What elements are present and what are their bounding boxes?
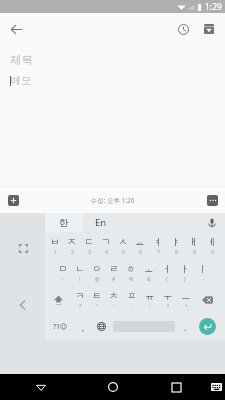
button[interactable]: Enter (199, 318, 216, 335)
staticText: ㅔ (207, 236, 217, 248)
staticText: ㄹ (109, 263, 119, 275)
staticText: 1:29 (205, 1, 222, 13)
staticText: ㅐ (189, 236, 199, 248)
staticText: ㅜ (163, 290, 173, 302)
button[interactable]: Reminder (170, 16, 196, 42)
staticText: * (79, 303, 82, 310)
staticText: 6 (139, 249, 142, 256)
button[interactable]: Archive (196, 16, 222, 42)
button[interactable]: Space (110, 313, 178, 340)
staticText: ㅋ (75, 290, 85, 302)
button[interactable]: ㅜ (159, 286, 177, 313)
button[interactable]: ㅌ (88, 286, 105, 313)
staticText: ㅇ (92, 263, 102, 275)
staticText: 제목 (10, 53, 33, 67)
staticText: " (96, 303, 99, 310)
button[interactable]: Back (4, 17, 28, 41)
staticText: ㅅ (118, 236, 128, 248)
staticText: : (131, 303, 133, 310)
staticText: ㅠ (145, 290, 155, 302)
staticText: ㅊ (109, 290, 119, 302)
button[interactable]: ㅗ (140, 259, 158, 286)
button[interactable]: , (75, 313, 92, 340)
button[interactable]: 한 (45, 213, 83, 232)
staticText: ! (79, 276, 81, 283)
staticText: ㅡ (181, 290, 191, 302)
button[interactable]: ㅑ (167, 232, 185, 259)
staticText: ) (184, 276, 186, 283)
button[interactable]: Home (81, 374, 145, 400)
button[interactable]: Recent apps (145, 374, 207, 400)
button[interactable]: ㅋ (71, 286, 88, 313)
button[interactable]: Move keyboard left (11, 293, 35, 317)
staticText: & (147, 276, 151, 283)
button[interactable]: Voice input (199, 213, 225, 232)
staticText: , (82, 321, 85, 333)
button[interactable]: ㅐ (185, 232, 203, 259)
staticText: En (95, 216, 107, 229)
button[interactable]: ㄴ (71, 259, 88, 286)
staticText: 9 (193, 249, 196, 256)
staticText: ( (166, 276, 168, 283)
button[interactable]: ㅣ (194, 259, 212, 286)
button[interactable]: Backspace (195, 286, 221, 313)
staticText: 1 (54, 249, 57, 256)
button[interactable]: ㅠ (141, 286, 159, 313)
button[interactable]: ㄱ (97, 232, 114, 259)
button[interactable]: ㄷ (80, 232, 97, 259)
button[interactable]: ?1☺ (46, 313, 75, 340)
staticText: ㅛ (135, 236, 145, 248)
button[interactable]: ㅂ (46, 232, 63, 259)
staticText: % (129, 276, 134, 283)
staticText: 3 (88, 249, 91, 256)
staticText: 0 (211, 249, 214, 256)
button[interactable]: ㅏ (176, 259, 194, 286)
button[interactable]: Hide keyboard (207, 374, 225, 400)
staticText: @ (95, 276, 100, 283)
button[interactable]: ㅅ (114, 232, 131, 259)
button[interactable]: Change keyboard language (92, 313, 110, 340)
staticText: ' (113, 303, 115, 310)
staticText: ㅏ (180, 263, 190, 275)
button[interactable]: Add (3, 190, 23, 210)
staticText: ㅂ (50, 236, 60, 248)
button[interactable]: ㅡ (177, 286, 195, 313)
staticText: ; (149, 303, 151, 310)
staticText: 7 (157, 249, 160, 256)
staticText: ㄱ (101, 236, 111, 248)
staticText: 2 (71, 249, 74, 256)
button[interactable]: ㅇ (88, 259, 105, 286)
button[interactable]: ㄹ (105, 259, 122, 286)
button[interactable]: ㅎ (122, 259, 140, 286)
button[interactable]: . (178, 313, 193, 340)
staticText: ㅍ (127, 290, 137, 302)
staticText: ㅌ (92, 290, 102, 302)
staticText: ㅑ (171, 236, 181, 248)
staticText: # (112, 276, 116, 283)
button[interactable]: ㅍ (123, 286, 141, 313)
button[interactable]: ㅔ (203, 232, 221, 259)
button[interactable]: En (83, 213, 119, 232)
button[interactable]: ㅁ (54, 259, 71, 286)
staticText: ?1☺ (53, 322, 68, 332)
staticText: ㅁ (58, 263, 68, 275)
button[interactable]: ㅈ (63, 232, 80, 259)
staticText: 메모 (11, 74, 31, 87)
staticText: ㅎ (126, 263, 136, 275)
button[interactable]: ㅛ (131, 232, 149, 259)
staticText: ? (167, 303, 170, 310)
button[interactable]: Expand keyboard (12, 237, 34, 259)
staticText: 수정: 오후 1:26 (90, 196, 135, 205)
staticText: ㅕ (153, 236, 163, 248)
button[interactable]: Back (0, 374, 81, 400)
button[interactable]: ㅓ (158, 259, 176, 286)
staticText: . (184, 321, 187, 333)
button[interactable]: Shift (46, 286, 71, 313)
staticText: 5 (122, 249, 125, 256)
staticText: 8 (175, 249, 178, 256)
button[interactable]: ㅊ (105, 286, 123, 313)
staticText: + (185, 303, 188, 310)
button[interactable]: ㅕ (149, 232, 167, 259)
button[interactable]: More options (202, 190, 222, 210)
staticText: ㅓ (162, 263, 172, 275)
